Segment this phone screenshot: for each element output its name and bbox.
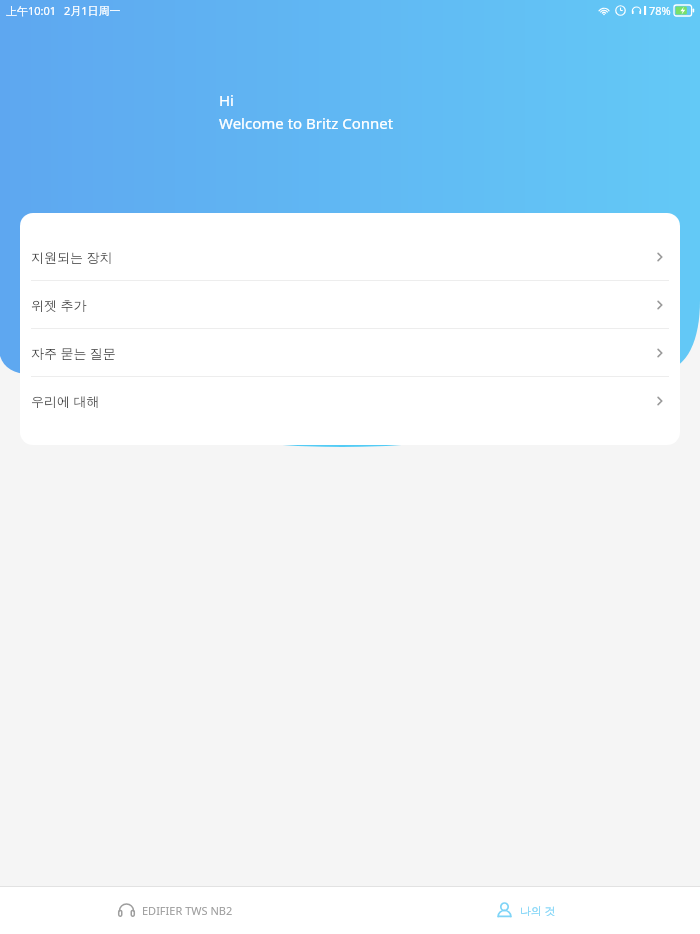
- staticText: 위젯 추가: [31, 296, 87, 314]
- button[interactable]: 나의 것: [350, 887, 700, 934]
- staticText: 우리에 대해: [31, 392, 100, 410]
- staticText: 78%: [649, 3, 671, 18]
- button[interactable]: EDIFIER TWS NB2: [0, 887, 350, 934]
- staticText: Welcome to Britz Connet: [219, 113, 394, 133]
- button[interactable]: 자주 묻는 질문: [20, 329, 680, 376]
- staticText: 2月1日周一: [64, 3, 121, 18]
- staticText: EDIFIER TWS NB2: [142, 903, 233, 918]
- staticText: 上午10:01: [6, 3, 57, 18]
- staticText: 나의 것: [520, 903, 556, 918]
- staticText: Hi: [219, 90, 234, 110]
- staticText: 자주 묻는 질문: [31, 344, 116, 362]
- staticText: 지원되는 장치: [31, 248, 113, 266]
- button[interactable]: 지원되는 장치: [20, 233, 680, 280]
- button[interactable]: 위젯 추가: [20, 281, 680, 328]
- button[interactable]: 우리에 대해: [20, 377, 680, 424]
